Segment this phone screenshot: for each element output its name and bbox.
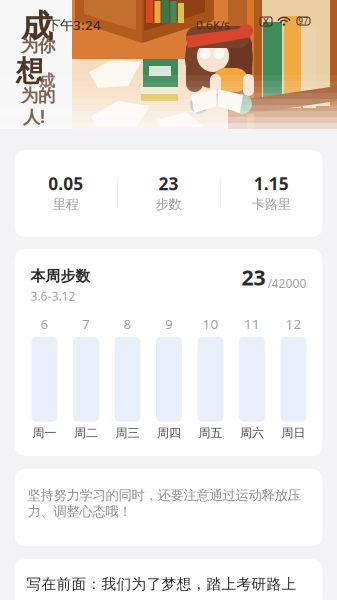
staticText: 23	[241, 263, 265, 291]
staticText: 10	[202, 315, 218, 333]
staticText: 为的	[21, 85, 55, 106]
staticText: 写在前面：我们为了梦想，踏上考研路上	[26, 575, 296, 593]
staticText: /42000	[267, 275, 306, 291]
staticText: 97	[298, 16, 308, 26]
staticText: 周二	[74, 426, 98, 440]
staticText: 12	[285, 315, 301, 333]
staticText: 23	[158, 172, 178, 195]
staticText: 11	[244, 315, 260, 333]
staticText: 0.05	[48, 172, 83, 195]
staticText: 成	[39, 71, 55, 91]
staticText: 里程	[53, 196, 79, 212]
staticText: 为你	[21, 35, 55, 56]
staticText: 本周步数	[30, 267, 90, 285]
staticText: 6	[40, 315, 48, 333]
staticText: 周四	[157, 426, 181, 440]
staticText: 3.6-3.12	[30, 288, 75, 304]
button[interactable]: 23	[117, 150, 220, 237]
staticText: 周日	[281, 426, 305, 440]
staticText: X	[263, 15, 269, 28]
staticText: 步数	[155, 196, 181, 212]
staticText: 周一	[32, 426, 56, 440]
staticText: 人!	[23, 105, 45, 128]
staticText: 下午3:24	[47, 16, 101, 34]
button[interactable]: 0.05	[14, 150, 117, 237]
staticText: 0.6K/s	[196, 17, 230, 33]
staticText: 坚持努力学习的同时，还要注意通过运动释放压力、调整心态哦！	[27, 487, 300, 520]
staticText: 成	[21, 7, 53, 46]
staticText: 周三	[115, 426, 139, 440]
staticText: 1.15	[254, 172, 289, 195]
staticText: 周五	[198, 426, 222, 440]
button[interactable]: 1.15	[220, 150, 322, 237]
staticText: 想	[16, 54, 44, 88]
staticText: 9	[165, 315, 173, 333]
staticText: 卡路里	[252, 196, 291, 212]
staticText: 7	[82, 315, 90, 333]
staticText: 8	[123, 315, 131, 333]
staticText: 周六	[240, 426, 264, 440]
